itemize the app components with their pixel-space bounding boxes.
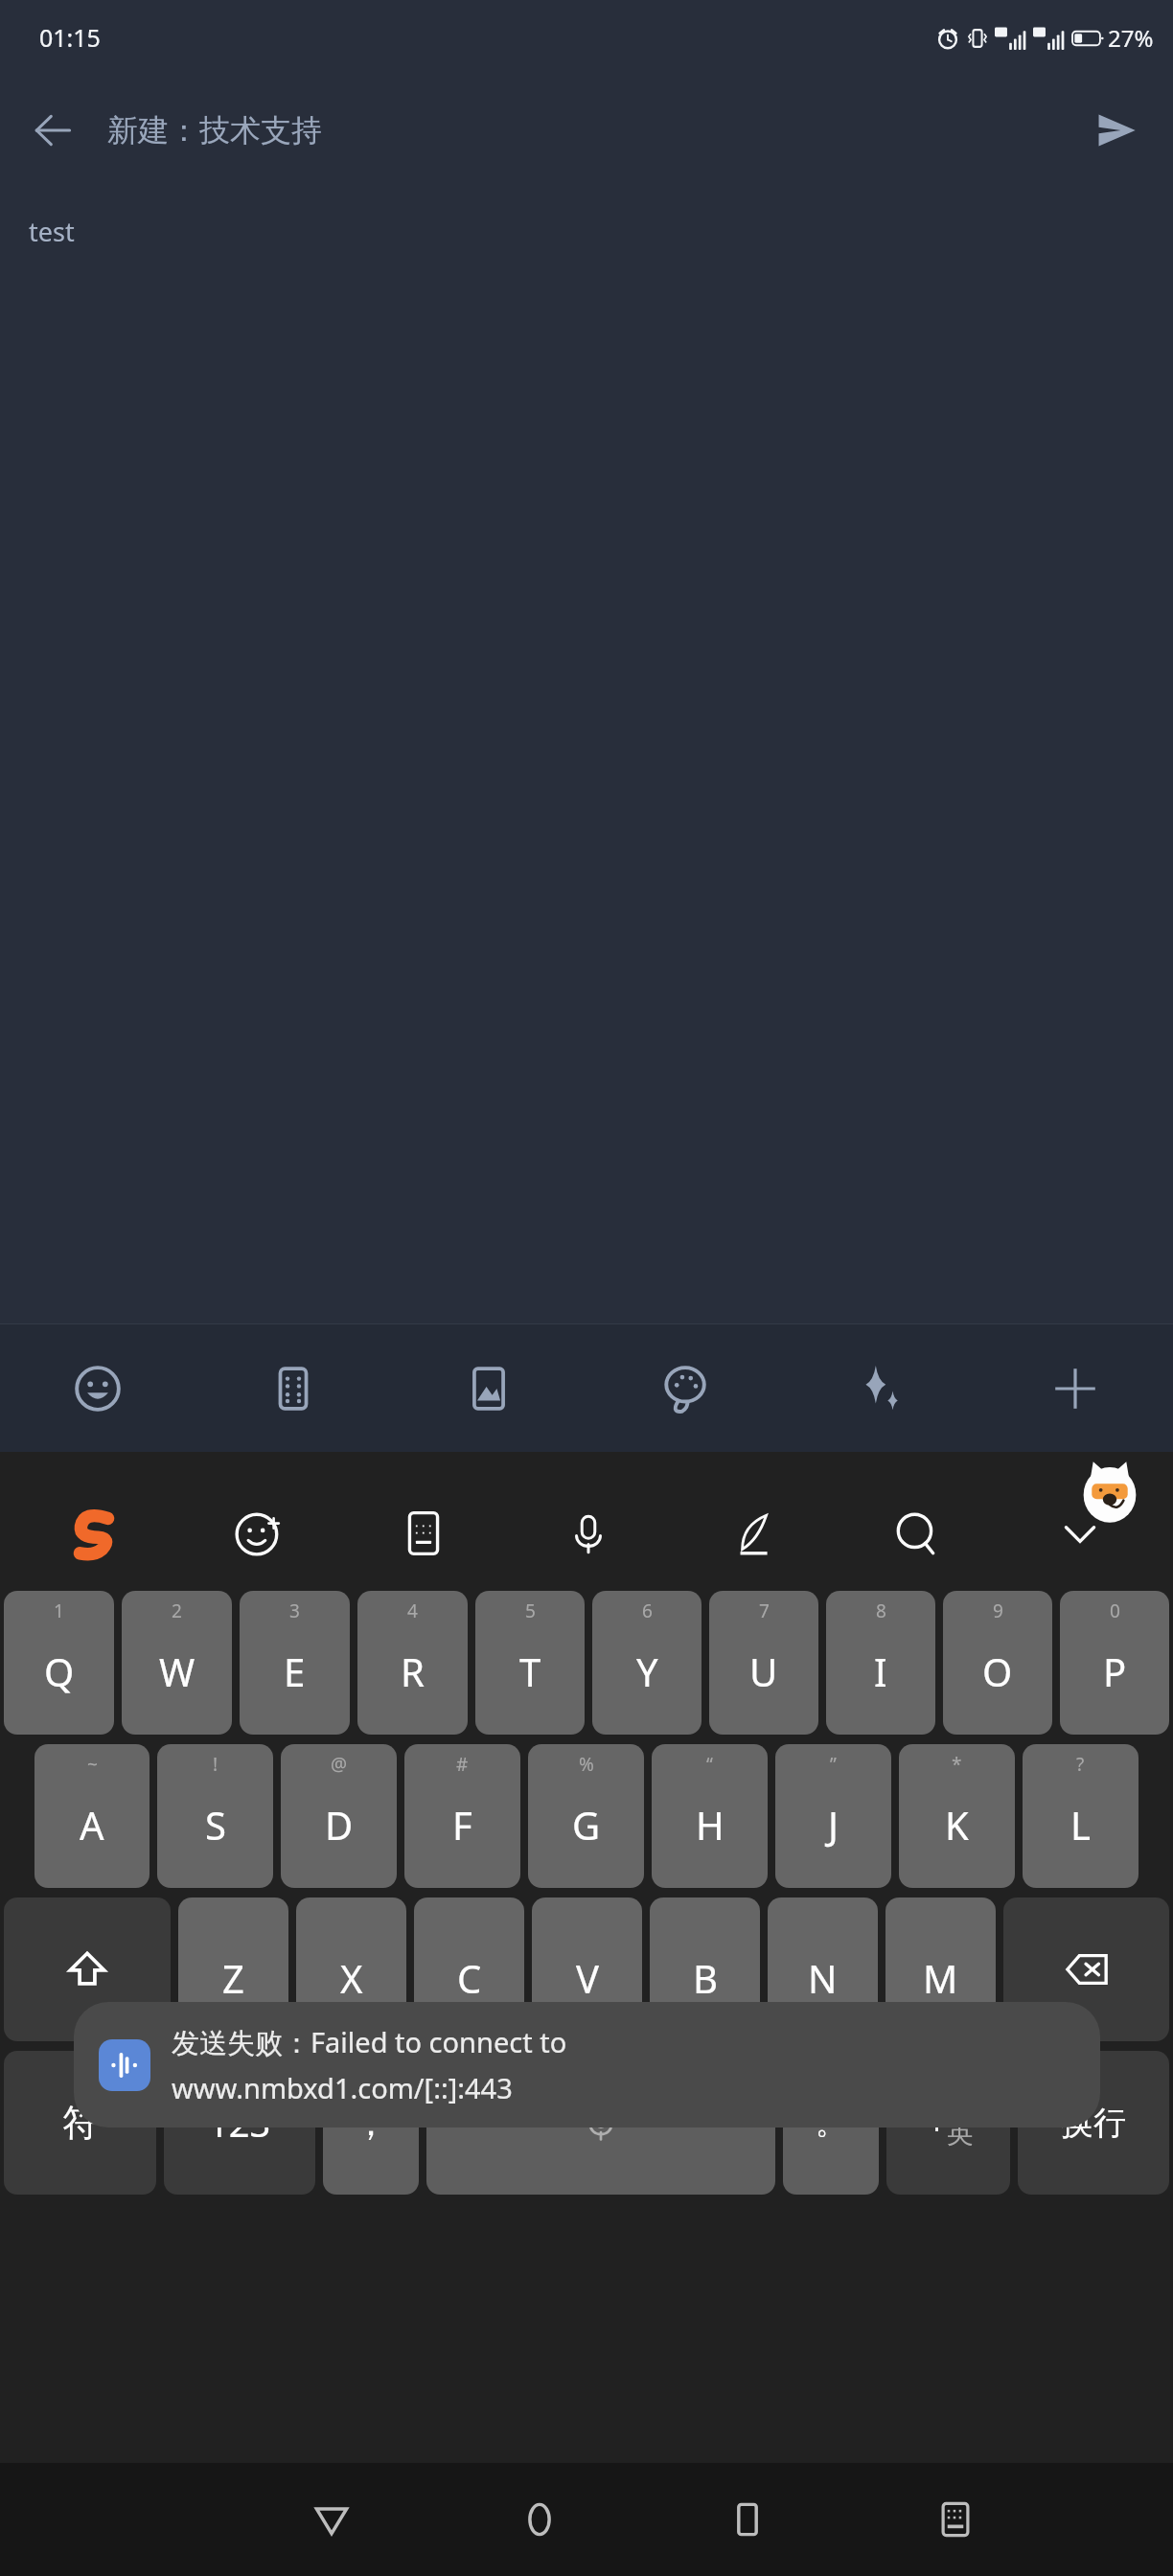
button[interactable]: Assistant [1075, 1458, 1144, 1527]
staticText: K [945, 1799, 969, 1851]
button[interactable]: Voice [506, 1485, 670, 1581]
button[interactable]: Image [391, 1324, 586, 1452]
button[interactable]: Collapse [998, 1485, 1161, 1581]
button[interactable]: ? [1023, 1744, 1138, 1888]
staticText: # [456, 1752, 469, 1777]
button[interactable]: Search [834, 1485, 998, 1581]
button[interactable]: Recents [643, 2463, 851, 2576]
button[interactable]: Add [977, 1324, 1173, 1452]
button[interactable]: Dice [195, 1324, 391, 1452]
button[interactable]: ! [157, 1744, 273, 1888]
staticText: 2 [172, 1598, 182, 1623]
staticText: O [982, 1645, 1013, 1697]
button[interactable]: 8 [826, 1591, 935, 1735]
staticText: % [579, 1752, 594, 1777]
button[interactable]: 5 [475, 1591, 585, 1735]
staticText: 0 [1110, 1598, 1120, 1623]
button[interactable]: ” [775, 1744, 891, 1888]
staticText: U [749, 1645, 778, 1697]
staticText: 发送失败：Failed to connect to [172, 2023, 567, 2061]
staticText: 6 [642, 1598, 653, 1623]
button[interactable]: 。 [783, 2051, 879, 2195]
button[interactable]: # [404, 1744, 520, 1888]
button[interactable]: Backspace [1003, 1897, 1169, 2041]
staticText: 8 [876, 1598, 886, 1623]
staticText: test [29, 214, 75, 249]
staticText: D [325, 1799, 354, 1851]
button[interactable]: 6 [592, 1591, 701, 1735]
button[interactable]: @ [281, 1744, 397, 1888]
button[interactable]: Emoji [176, 1485, 341, 1581]
button[interactable]: Home [435, 2463, 643, 2576]
button[interactable]: Keyboard [851, 2463, 1059, 2576]
button[interactable]: “ [652, 1744, 768, 1888]
button[interactable]: C [414, 1897, 524, 2041]
button[interactable]: 3 [240, 1591, 350, 1735]
button[interactable]: Switch language [886, 2051, 1010, 2195]
button[interactable]: 9 [943, 1591, 1052, 1735]
staticText: 7 [759, 1598, 770, 1623]
button[interactable]: Shift [4, 1897, 171, 2041]
button[interactable]: 123 [164, 2051, 315, 2195]
button[interactable]: 1 [4, 1591, 114, 1735]
staticText: P [1103, 1645, 1127, 1697]
staticText: T [519, 1645, 541, 1697]
staticText: 换行 [1061, 2103, 1126, 2144]
button[interactable]: Emoji [0, 1324, 195, 1452]
staticText: @ [331, 1752, 348, 1777]
staticText: ? [1076, 1752, 1085, 1777]
staticText: S [205, 1799, 226, 1851]
staticText: 。 [816, 2104, 846, 2142]
button[interactable]: ， [323, 2051, 419, 2195]
staticText: A [80, 1799, 104, 1851]
button[interactable]: 7 [709, 1591, 818, 1735]
button[interactable]: M [885, 1897, 996, 2041]
button[interactable]: Send [1079, 94, 1152, 167]
button[interactable]: 2 [122, 1591, 232, 1735]
staticText: F [452, 1799, 472, 1851]
staticText: B [693, 1952, 718, 2004]
button[interactable]: % [528, 1744, 644, 1888]
staticText: N [808, 1952, 838, 2004]
button[interactable]: 4 [357, 1591, 468, 1735]
staticText: I [874, 1645, 887, 1697]
button[interactable]: Palette [586, 1324, 782, 1452]
button[interactable]: X [296, 1897, 406, 2041]
staticText: ” [830, 1752, 837, 1777]
staticText: 4 [407, 1598, 418, 1623]
button[interactable]: Back [227, 2463, 435, 2576]
staticText: * [952, 1752, 962, 1777]
staticText: ! [213, 1752, 218, 1777]
staticText: W [159, 1645, 195, 1697]
button[interactable]: 0 [1060, 1591, 1169, 1735]
staticText: J [828, 1799, 839, 1851]
button[interactable]: B [650, 1897, 760, 2041]
button[interactable]: N [768, 1897, 878, 2041]
button[interactable]: Handwriting [670, 1485, 834, 1581]
staticText: 27% [1108, 22, 1154, 54]
button[interactable]: Back [19, 97, 86, 164]
staticText: 新建：技术支持 [107, 111, 322, 149]
staticText: www.nmbxd1.com/[::]:443 [172, 2069, 513, 2106]
button[interactable]: Sparkle [782, 1324, 977, 1452]
staticText: ~ [87, 1752, 98, 1777]
button[interactable]: Sogou [11, 1485, 176, 1581]
staticText: V [576, 1952, 599, 2004]
button[interactable]: 符 [4, 2051, 156, 2195]
button[interactable]: ~ [34, 1744, 149, 1888]
staticText: 01:15 [39, 21, 101, 54]
button[interactable]: V [532, 1897, 642, 2041]
button[interactable]: * [899, 1744, 1015, 1888]
button[interactable]: Space [426, 2051, 775, 2195]
staticText: Z [222, 1952, 244, 2004]
staticText: E [284, 1645, 306, 1697]
button[interactable]: Keyboard [341, 1485, 506, 1581]
staticText: C [457, 1952, 482, 2004]
button[interactable]: Z [178, 1897, 288, 2041]
staticText: R [401, 1645, 425, 1697]
button[interactable]: 换行 [1018, 2051, 1169, 2195]
staticText: 123 [208, 2098, 271, 2148]
staticText: ， [354, 2102, 388, 2145]
staticText: M [923, 1952, 958, 2004]
staticText: 5 [525, 1598, 536, 1623]
